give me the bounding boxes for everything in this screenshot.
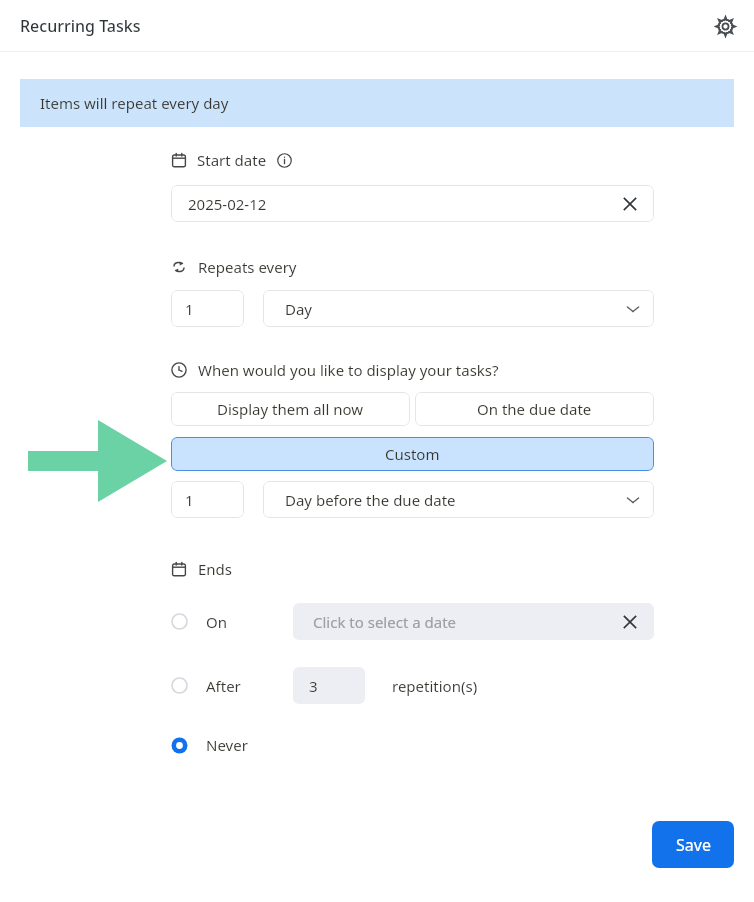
staticText: On [206, 612, 227, 632]
staticText: 1 [185, 490, 194, 510]
button[interactable]: On the due date [415, 392, 654, 426]
button[interactable]: After [171, 667, 293, 704]
button[interactable]: Click to select a date [293, 603, 654, 640]
button[interactable]: Save [652, 821, 734, 868]
button[interactable]: Custom [171, 437, 654, 471]
staticText: When would you like to display your task… [198, 360, 499, 380]
button[interactable]: 3 [293, 667, 365, 704]
staticText: 1 [185, 299, 194, 319]
staticText: Repeats every [198, 257, 297, 277]
button[interactable]: 1 [171, 290, 244, 327]
staticText: Display them all now [217, 399, 364, 419]
button[interactable]: Day before the due date [263, 481, 654, 518]
staticText: Never [206, 735, 248, 755]
staticText: Day before the due date [285, 490, 456, 510]
button[interactable]: 1 [171, 481, 244, 518]
staticText: Start date [197, 150, 267, 170]
staticText: Items will repeat every day [40, 93, 229, 113]
button[interactable]: On [171, 603, 293, 640]
staticText: repetition(s) [392, 676, 478, 696]
staticText: Custom [385, 444, 440, 464]
button[interactable]: Never [171, 731, 311, 759]
button[interactable]: Settings [710, 11, 740, 41]
staticText: After [206, 676, 241, 696]
staticText: Recurring Tasks [20, 15, 141, 37]
staticText: Save [676, 834, 711, 856]
button[interactable]: Clear end date [620, 612, 640, 632]
staticText: 2025-02-12 [188, 194, 267, 214]
button[interactable]: Display them all now [171, 392, 410, 426]
button[interactable]: Day [263, 290, 654, 327]
staticText: 3 [309, 676, 318, 696]
button[interactable]: 2025-02-12 [171, 185, 654, 222]
button[interactable]: Clear start date [620, 194, 640, 214]
staticText: Ends [198, 559, 233, 579]
staticText: On the due date [477, 399, 592, 419]
staticText: Click to select a date [313, 612, 457, 632]
staticText: Day [285, 299, 313, 319]
